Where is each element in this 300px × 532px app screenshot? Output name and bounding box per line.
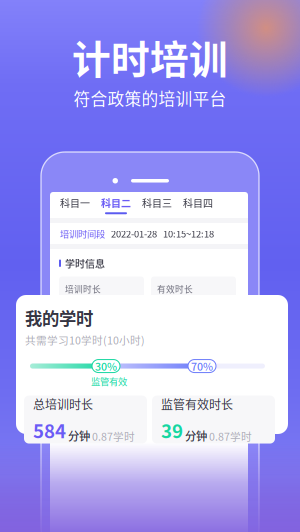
button[interactable]: 科目一 <box>60 196 90 214</box>
staticText: 有效时长 <box>157 282 193 295</box>
staticText: 24.00 <box>125 377 152 394</box>
staticText: 学时信息 <box>65 256 105 270</box>
staticText: 分钟 <box>87 304 103 315</box>
staticText: 240 <box>65 298 86 315</box>
staticText: 30% <box>95 358 117 374</box>
staticText: 不可以重复提交审核学时 <box>78 418 177 432</box>
button[interactable]: 科目三 <box>142 196 172 214</box>
staticText: 科目一 <box>60 196 90 210</box>
staticText: 培训时间段 <box>60 227 105 240</box>
staticText: 总培训时长 <box>33 395 93 413</box>
staticText: 监管有效 <box>91 374 127 388</box>
staticText: 584 <box>33 417 66 444</box>
staticText: 培训时间段 <box>60 383 105 396</box>
staticText: 2022-01-28 <box>111 227 157 240</box>
staticText: 监管有效时长 <box>161 395 233 413</box>
staticText: 分钟 <box>68 427 90 444</box>
staticText: 科目三 <box>142 196 172 210</box>
staticText: 共需学习10学时(10小时) <box>25 332 145 347</box>
staticText: 0.87学时 <box>209 428 252 444</box>
staticText: 符合政策的培训平台 <box>73 86 226 110</box>
button[interactable]: 科目二 <box>101 196 131 214</box>
staticText: 0.87学时 <box>92 428 135 444</box>
staticText: 70% <box>191 358 213 374</box>
staticText: 10:15~12:18 <box>163 227 214 240</box>
staticText: 39 <box>161 417 183 444</box>
staticText: 科目四 <box>183 196 213 210</box>
staticText: 备案无效原因 <box>65 400 119 413</box>
staticText: 计时培训 <box>72 29 228 85</box>
staticText: 有效里程 <box>85 380 121 394</box>
staticText: 2022-01-27 <box>111 383 157 396</box>
staticText: 分钟 <box>185 427 207 444</box>
staticText: 科目二 <box>101 196 131 210</box>
button[interactable]: 科目四 <box>183 196 213 214</box>
staticText: 培训时长 <box>65 282 101 295</box>
staticText: 我的学时 <box>25 305 93 330</box>
